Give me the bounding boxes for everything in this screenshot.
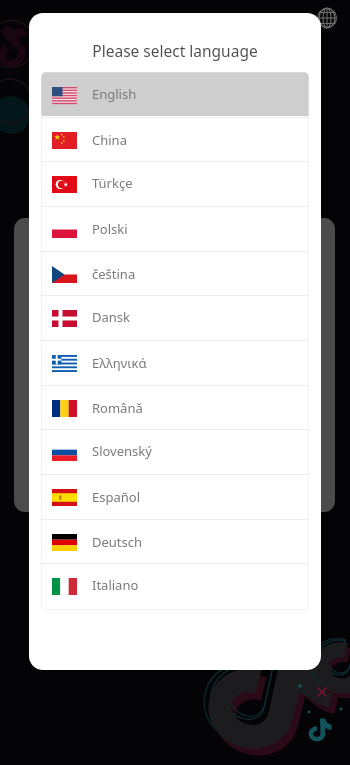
staticText: China	[92, 131, 127, 149]
button[interactable]: Deutsch	[41, 519, 309, 564]
button[interactable]: Change language	[312, 3, 342, 33]
button[interactable]: Italiano	[41, 563, 309, 607]
button[interactable]: čeština	[41, 251, 309, 296]
button[interactable]: Türkçe	[41, 161, 309, 205]
button[interactable]: Slovenský	[41, 429, 309, 473]
button[interactable]: Español	[41, 474, 309, 519]
staticText: Ελληνικά	[92, 354, 147, 372]
staticText: Română	[92, 399, 143, 417]
staticText: Dansk	[92, 308, 130, 326]
staticText: Slovenský	[92, 442, 152, 460]
button[interactable]: English	[41, 72, 309, 116]
button[interactable]: Polski	[41, 206, 309, 251]
button[interactable]: Dansk	[41, 295, 309, 339]
staticText: čeština	[92, 265, 136, 283]
button[interactable]: Ελληνικά	[41, 340, 309, 385]
staticText: Please select language	[29, 40, 321, 61]
staticText: Español	[92, 488, 140, 506]
staticText: Deutsch	[92, 533, 143, 551]
staticText: Polski	[92, 220, 128, 238]
staticText: English	[92, 85, 137, 103]
staticText: Türkçe	[92, 174, 133, 192]
staticText: Italiano	[92, 576, 139, 594]
button[interactable]: China	[41, 117, 309, 162]
button[interactable]: Română	[41, 385, 309, 430]
